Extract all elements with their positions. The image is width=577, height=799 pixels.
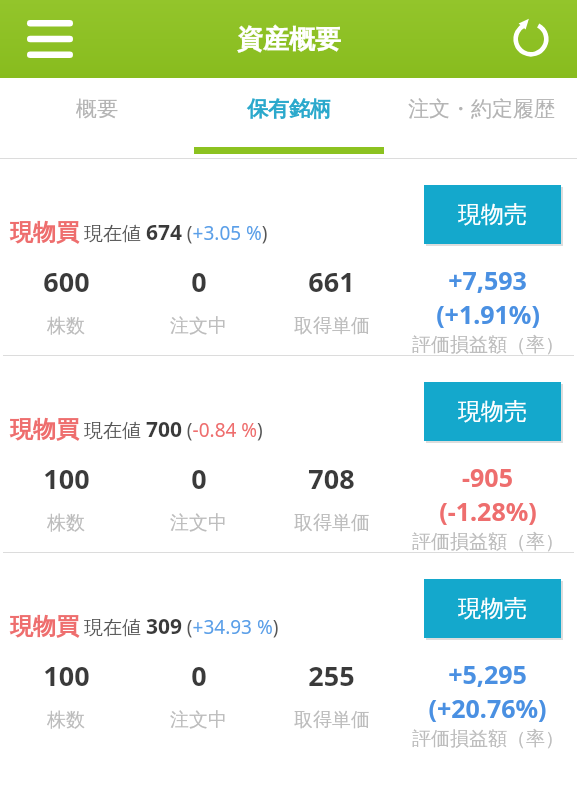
staticText: 取得単価 bbox=[294, 511, 370, 535]
button[interactable]: 現物売 bbox=[0, 553, 577, 749]
button[interactable]: 現物売 bbox=[424, 382, 561, 441]
staticText: 600 bbox=[43, 263, 90, 300]
staticText: 100 bbox=[43, 460, 90, 497]
staticText: +7,593 bbox=[448, 263, 527, 297]
staticText: 概要 bbox=[76, 96, 118, 122]
staticText: 注文・約定履歴 bbox=[408, 96, 555, 122]
staticText: (-1.28%) bbox=[439, 494, 537, 528]
staticText: 取得単価 bbox=[294, 314, 370, 338]
staticText: 取得単価 bbox=[294, 708, 370, 732]
staticText: 資産概要 bbox=[237, 23, 341, 56]
staticText: 株数 bbox=[47, 511, 85, 535]
staticText: 注文中 bbox=[170, 314, 227, 338]
button[interactable]: Menu bbox=[22, 11, 78, 67]
staticText: 100 bbox=[43, 657, 90, 694]
staticText: 現物買 現在値 700 (-0.84 %) bbox=[10, 415, 263, 444]
button[interactable]: 概要 bbox=[0, 78, 193, 158]
staticText: 708 bbox=[308, 460, 355, 497]
staticText: 0 bbox=[191, 460, 207, 497]
staticText: 評価損益額（率） bbox=[412, 333, 564, 355]
staticText: 注文中 bbox=[170, 708, 227, 732]
staticText: 株数 bbox=[47, 708, 85, 732]
staticText: 株数 bbox=[47, 314, 85, 338]
staticText: 現物買 現在値 309 (+34.93 %) bbox=[10, 612, 279, 641]
button[interactable]: Refresh bbox=[503, 11, 559, 67]
button[interactable]: 現物売 bbox=[0, 159, 577, 355]
staticText: 661 bbox=[308, 263, 355, 300]
button[interactable]: 現物売 bbox=[424, 579, 561, 638]
button[interactable]: 現物売 bbox=[424, 185, 561, 244]
staticText: 0 bbox=[191, 657, 207, 694]
staticText: 現物買 現在値 674 (+3.05 %) bbox=[10, 218, 268, 247]
staticText: (+20.76%) bbox=[428, 691, 547, 725]
staticText: 評価損益額（率） bbox=[412, 727, 564, 749]
staticText: 現物売 bbox=[458, 200, 527, 229]
button[interactable]: 現物売 bbox=[0, 356, 577, 552]
staticText: (+1.91%) bbox=[436, 297, 540, 331]
staticText: -905 bbox=[462, 460, 513, 494]
staticText: 現物売 bbox=[458, 594, 527, 623]
button[interactable]: 保有銘柄 bbox=[193, 78, 385, 158]
staticText: +5,295 bbox=[448, 657, 527, 691]
staticText: 0 bbox=[191, 263, 207, 300]
staticText: 注文中 bbox=[170, 511, 227, 535]
staticText: 現物売 bbox=[458, 397, 527, 426]
button[interactable]: 注文・約定履歴 bbox=[385, 78, 577, 158]
staticText: 255 bbox=[308, 657, 355, 694]
staticText: 保有銘柄 bbox=[247, 96, 331, 122]
staticText: 評価損益額（率） bbox=[412, 530, 564, 552]
